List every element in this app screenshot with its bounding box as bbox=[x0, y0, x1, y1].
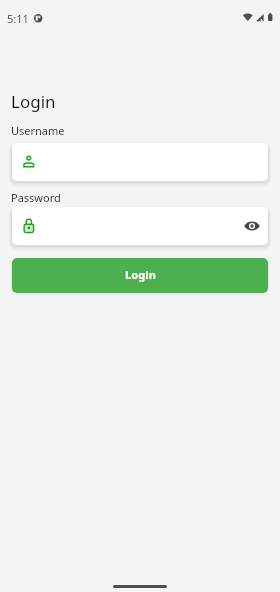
staticText: Password bbox=[11, 190, 61, 205]
button[interactable]: Password field bbox=[12, 207, 268, 245]
staticText: Username bbox=[11, 123, 65, 138]
button[interactable]: Username field bbox=[12, 143, 268, 181]
button[interactable]: Toggle password visibility bbox=[244, 217, 260, 235]
staticText: Login bbox=[125, 267, 156, 282]
button[interactable]: Login bbox=[12, 258, 268, 293]
staticText: 5:11 bbox=[7, 11, 29, 26]
staticText: Login bbox=[11, 90, 56, 113]
